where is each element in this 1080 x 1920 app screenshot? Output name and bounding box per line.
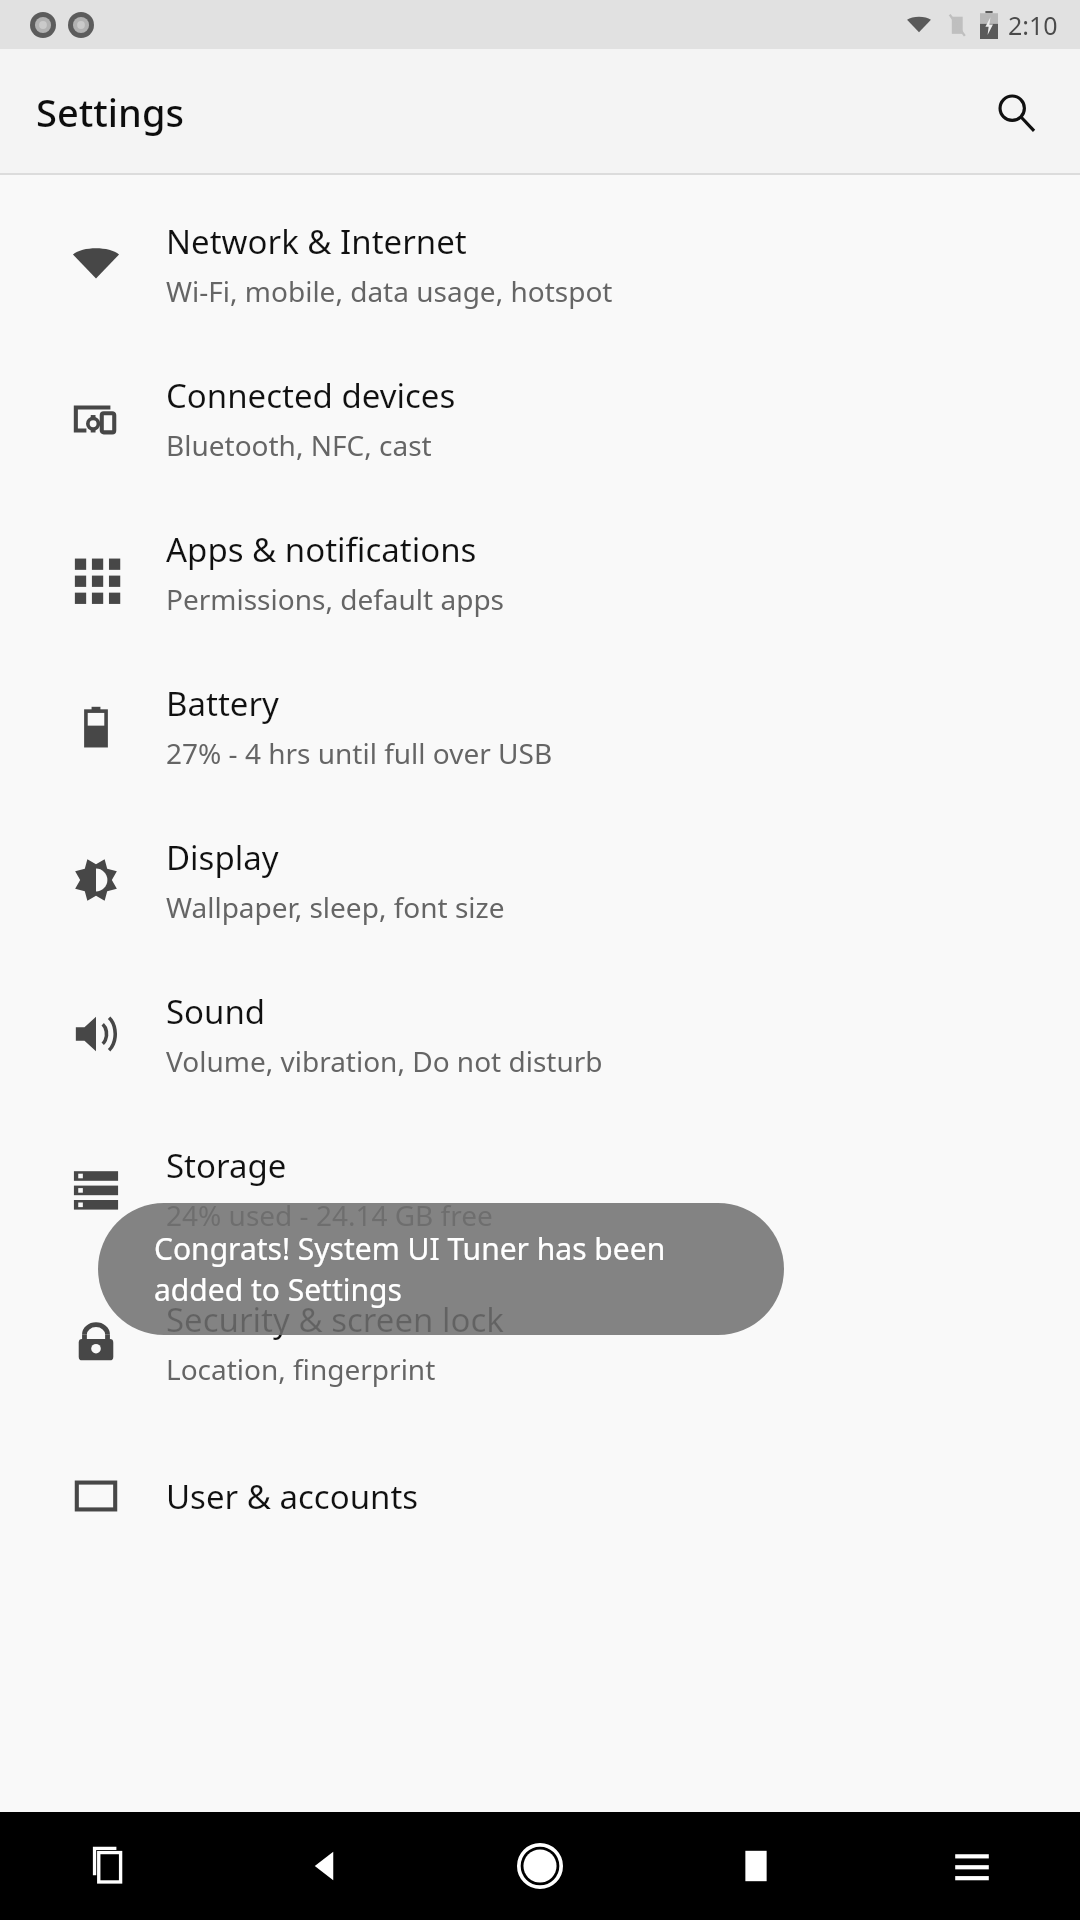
button[interactable]: Back: [216, 1812, 432, 1920]
staticText: Network & Internet: [166, 219, 467, 264]
staticText: Apps & notifications: [166, 527, 477, 572]
staticText: Sound: [166, 989, 266, 1034]
staticText: Wallpaper, sleep, font size: [166, 888, 505, 926]
staticText: Connected devices: [166, 373, 456, 418]
button[interactable]: Security & screen lock: [0, 1265, 1080, 1419]
staticText: Display: [166, 835, 279, 880]
staticText: Settings: [36, 86, 184, 138]
staticText: Storage: [166, 1143, 287, 1188]
staticText: Volume, vibration, Do not disturb: [166, 1042, 603, 1080]
button[interactable]: Recents: [648, 1812, 864, 1920]
staticText: Wi-Fi, mobile, data usage, hotspot: [166, 272, 613, 310]
button[interactable]: Split screen: [0, 1812, 216, 1920]
button[interactable]: User & accounts: [0, 1419, 1080, 1573]
staticText: Security & screen lock: [166, 1297, 504, 1342]
button[interactable]: Battery: [0, 649, 1080, 803]
button[interactable]: Sound: [0, 957, 1080, 1111]
staticText: 24% used - 24.14 GB free: [166, 1196, 493, 1234]
button[interactable]: Apps & notifications: [0, 495, 1080, 649]
button[interactable]: Connected devices: [0, 341, 1080, 495]
staticText: User & accounts: [166, 1474, 419, 1519]
staticText: Congrats! System UI Tuner has been added…: [154, 1228, 666, 1310]
button[interactable]: Storage: [0, 1111, 1080, 1265]
staticText: Permissions, default apps: [166, 580, 505, 618]
staticText: Battery: [166, 681, 279, 726]
staticText: 2:10: [1008, 8, 1058, 42]
staticText: Location, fingerprint: [166, 1350, 436, 1388]
button[interactable]: Display: [0, 803, 1080, 957]
button[interactable]: Network & Internet: [0, 187, 1080, 341]
staticText: Bluetooth, NFC, cast: [166, 426, 432, 464]
button[interactable]: Search: [986, 82, 1046, 142]
button[interactable]: Menu: [864, 1812, 1080, 1920]
staticText: 27% - 4 hrs until full over USB: [166, 734, 553, 772]
button[interactable]: Home: [432, 1812, 648, 1920]
